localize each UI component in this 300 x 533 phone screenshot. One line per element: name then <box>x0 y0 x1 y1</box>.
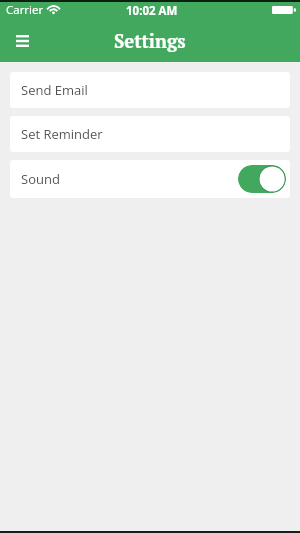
button[interactable]: Sound <box>10 160 290 198</box>
staticText: Carrier <box>6 2 44 18</box>
staticText: Sound <box>21 170 60 188</box>
button[interactable]: Open navigation menu <box>0 19 44 62</box>
staticText: 10:02 AM <box>126 3 178 19</box>
button[interactable]: Sound on <box>238 165 286 193</box>
staticText: Settings <box>114 29 186 54</box>
button[interactable]: Send Email <box>10 72 290 108</box>
staticText: Send Email <box>21 81 88 99</box>
button[interactable]: Set Reminder <box>10 116 290 152</box>
staticText: Set Reminder <box>21 125 103 143</box>
